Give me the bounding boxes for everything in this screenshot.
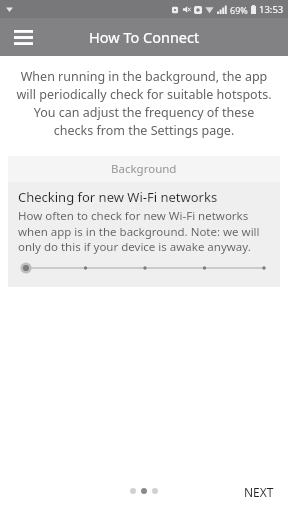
button[interactable]: Checking for new Wi-Fi networks <box>8 182 280 287</box>
staticText: Background <box>111 161 177 177</box>
staticText: Checking for new Wi-Fi networks <box>18 188 218 206</box>
button[interactable]: Open navigation menu <box>6 20 40 54</box>
staticText: 69% <box>230 4 248 16</box>
staticText: How often to check for new Wi-Fi network… <box>18 208 270 254</box>
button[interactable]: NEXT <box>230 476 288 508</box>
staticText: When running in the background, the app … <box>14 68 274 138</box>
staticText: 13:53 <box>259 3 284 16</box>
button[interactable]: Check frequency slider <box>18 259 270 277</box>
staticText: NEXT <box>244 484 274 500</box>
staticText: How To Connect <box>89 27 200 47</box>
